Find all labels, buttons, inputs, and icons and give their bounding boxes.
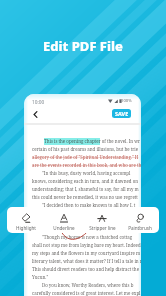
staticText: knows, considering each in turn, and it … <box>32 178 139 184</box>
staticText: Underline <box>53 225 75 231</box>
staticText: has recorded it all so that the world ma… <box>32 226 139 232</box>
staticText: shall not stop me from laying bare my he… <box>32 242 141 248</box>
staticText: my steps and the flowers in my courtyard… <box>32 250 141 256</box>
staticText: are the events recorded in this book, an… <box>32 162 141 168</box>
button[interactable]: Stripper line <box>83 209 121 231</box>
button[interactable]: Back <box>28 107 42 121</box>
staticText: the Immortal Stone and my ancestors' vir… <box>32 210 140 216</box>
staticText: This is the opening chapter of the novel… <box>44 138 141 144</box>
staticText: Edit PDF File <box>43 37 123 55</box>
staticText: understanding; that I, shameful to say, … <box>32 186 139 192</box>
button[interactable]: Highlight <box>7 209 45 231</box>
staticText: Paintbrush <box>128 225 152 231</box>
staticText: Do you know, Worthy Readers, where this … <box>42 282 134 288</box>
staticText: 10:00 <box>32 99 45 106</box>
staticText: this could never be remedied, it was no … <box>32 194 138 200</box>
staticText: "In this busy, dusty world, having accom… <box>42 170 131 176</box>
staticText: "Though my home is now a thatched cottag <box>42 234 133 240</box>
staticText: 100% <box>121 98 132 104</box>
staticText: literary talent, what does it matter? If… <box>32 258 141 264</box>
staticText: certain of his past dreams and illusions… <box>32 146 139 152</box>
button[interactable]: SAVE <box>112 109 131 118</box>
staticText: Yucun." <box>32 274 49 280</box>
staticText: Highlight <box>16 225 36 231</box>
staticText: SAVE <box>115 110 129 117</box>
staticText: a dream of love had once been mine, and … <box>32 218 139 224</box>
staticText: allegory of the jade of "Spiritual Under… <box>32 154 139 160</box>
button[interactable]: Underline <box>45 209 83 231</box>
staticText: "I decided then to make known to all how… <box>42 202 136 208</box>
staticText: carefully considered is of great interes… <box>32 290 141 296</box>
staticText: Stripper line <box>89 225 116 231</box>
staticText: This should divert readers too and help … <box>32 266 140 272</box>
button[interactable]: Paintbrush <box>121 209 159 231</box>
